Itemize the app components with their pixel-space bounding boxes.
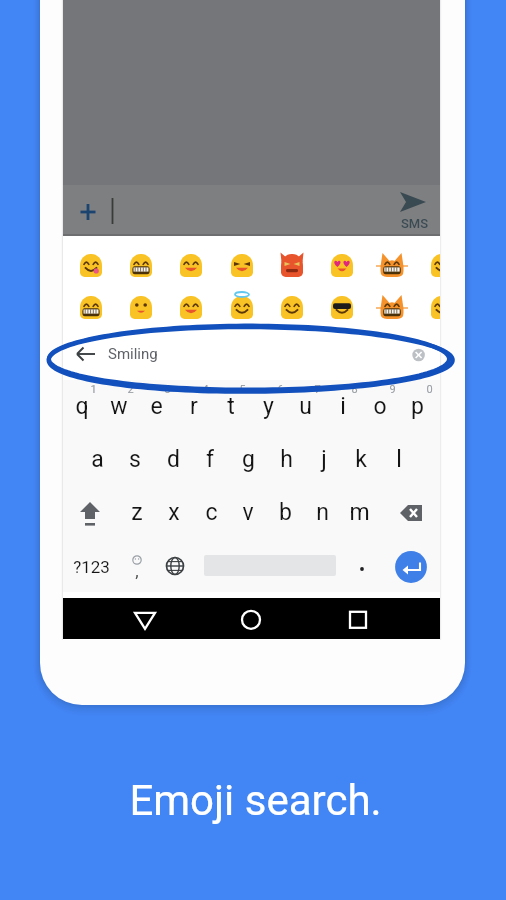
staticText: 4 (202, 383, 209, 396)
staticText: Emoji search. (129, 776, 382, 825)
button[interactable]: SMS (63, 185, 440, 236)
button[interactable]: v (228, 498, 268, 526)
button[interactable]: 2 (110, 375, 150, 403)
button[interactable]: 3 (147, 375, 187, 403)
button[interactable]: x (154, 498, 194, 526)
button[interactable]: e (136, 392, 176, 420)
staticText: l (396, 446, 402, 473)
button[interactable]: h (266, 445, 306, 473)
button[interactable]: m (339, 498, 379, 526)
staticText: 7 (314, 383, 321, 396)
staticText: u (299, 393, 312, 420)
button[interactable]: j (304, 445, 344, 473)
staticText: 3 (164, 383, 171, 396)
staticText: , (135, 561, 139, 581)
button[interactable]: t (211, 392, 251, 420)
staticText: t (227, 393, 235, 420)
button[interactable]: p (397, 392, 437, 420)
staticText: d (167, 446, 180, 473)
staticText: r (190, 393, 198, 420)
staticText: h (280, 446, 293, 473)
button[interactable]: 9 (372, 375, 412, 403)
staticText: 5 (239, 383, 246, 396)
staticText: y (263, 393, 274, 420)
button[interactable]: 0 (409, 375, 440, 403)
button[interactable]: q (63, 392, 102, 420)
staticText: o (373, 393, 387, 420)
button[interactable]: , (117, 557, 157, 585)
button[interactable]: b (265, 498, 305, 526)
staticText: g (242, 446, 255, 473)
staticText: v (242, 499, 254, 526)
staticText: 0 (426, 383, 433, 396)
button[interactable]: z (117, 498, 157, 526)
staticText: e (150, 393, 163, 420)
staticText: ?123 (73, 557, 110, 577)
button[interactable]: l (379, 445, 419, 473)
staticText: a (91, 446, 104, 473)
staticText: SMS (401, 216, 429, 231)
button[interactable]: s (115, 445, 155, 473)
button[interactable]: n (302, 498, 342, 526)
staticText: x (168, 499, 180, 526)
staticText: 1 (90, 383, 97, 396)
button[interactable]: d (153, 445, 193, 473)
staticText: 8 (351, 383, 358, 396)
staticText: i (340, 393, 346, 420)
button[interactable]: g (228, 445, 268, 473)
staticText: 2 (127, 383, 134, 396)
button[interactable]: o (360, 392, 400, 420)
button[interactable]: c (191, 498, 231, 526)
staticText: b (279, 499, 292, 526)
button[interactable]: 7 (297, 375, 337, 403)
button[interactable]: 4 (185, 375, 225, 403)
staticText: c (205, 499, 218, 526)
staticText: k (355, 446, 367, 473)
button[interactable]: k (341, 445, 381, 473)
button[interactable]: u (285, 392, 325, 420)
staticText: f (206, 446, 214, 473)
staticText: w (110, 393, 128, 420)
button[interactable]: y (248, 392, 288, 420)
staticText: m (349, 499, 370, 526)
button[interactable]: r (174, 392, 214, 420)
button[interactable]: 5 (222, 375, 262, 403)
staticText: z (131, 499, 143, 526)
staticText: Smiling (108, 345, 158, 363)
button[interactable]: ?123 (71, 553, 111, 581)
staticText: n (316, 499, 329, 526)
staticText: 6 (277, 383, 284, 396)
staticText: q (75, 393, 89, 420)
button[interactable]: 8 (334, 375, 374, 403)
button[interactable]: w (99, 392, 139, 420)
button[interactable]: a (77, 445, 117, 473)
staticText: 9 (389, 383, 396, 396)
button[interactable]: 1 (73, 375, 113, 403)
staticText: p (411, 393, 424, 420)
button[interactable]: i (323, 392, 363, 420)
staticText: s (129, 446, 141, 473)
button[interactable]: 6 (260, 375, 300, 403)
button[interactable]: f (190, 445, 230, 473)
staticText: j (321, 446, 327, 473)
